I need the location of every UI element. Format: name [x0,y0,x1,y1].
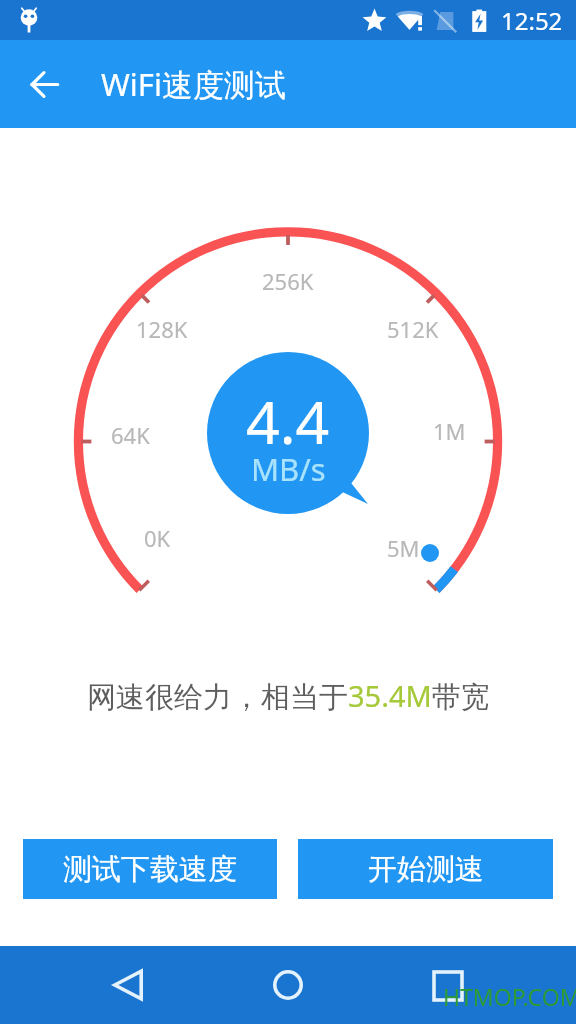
staticText: WiFi速度测试 [101,63,286,105]
staticText: HTMOP.COM [443,981,576,1012]
button[interactable]: Recents [418,956,478,1016]
staticText: 测试下载速度 [63,851,237,888]
staticText: 1M [433,416,466,446]
staticText: 128K [136,314,188,344]
staticText: 5M [387,533,420,563]
button[interactable]: Back [0,40,88,128]
staticText: 512K [387,314,439,344]
staticText: 4.4 [246,381,330,461]
button[interactable]: 测试下载速度 [23,839,277,899]
staticText: MB/s [251,448,326,490]
staticText: 网速很给力，相当于35.4M带宽 [87,676,490,716]
staticText: 256K [262,266,314,296]
button[interactable]: Navigate back [98,955,158,1015]
staticText: 64K [111,420,150,450]
staticText: 开始测速 [368,851,484,888]
button[interactable]: 开始测速 [298,839,553,899]
staticText: 12:52 [501,4,563,37]
staticText: 0K [144,523,171,553]
button[interactable]: Home [258,955,318,1015]
